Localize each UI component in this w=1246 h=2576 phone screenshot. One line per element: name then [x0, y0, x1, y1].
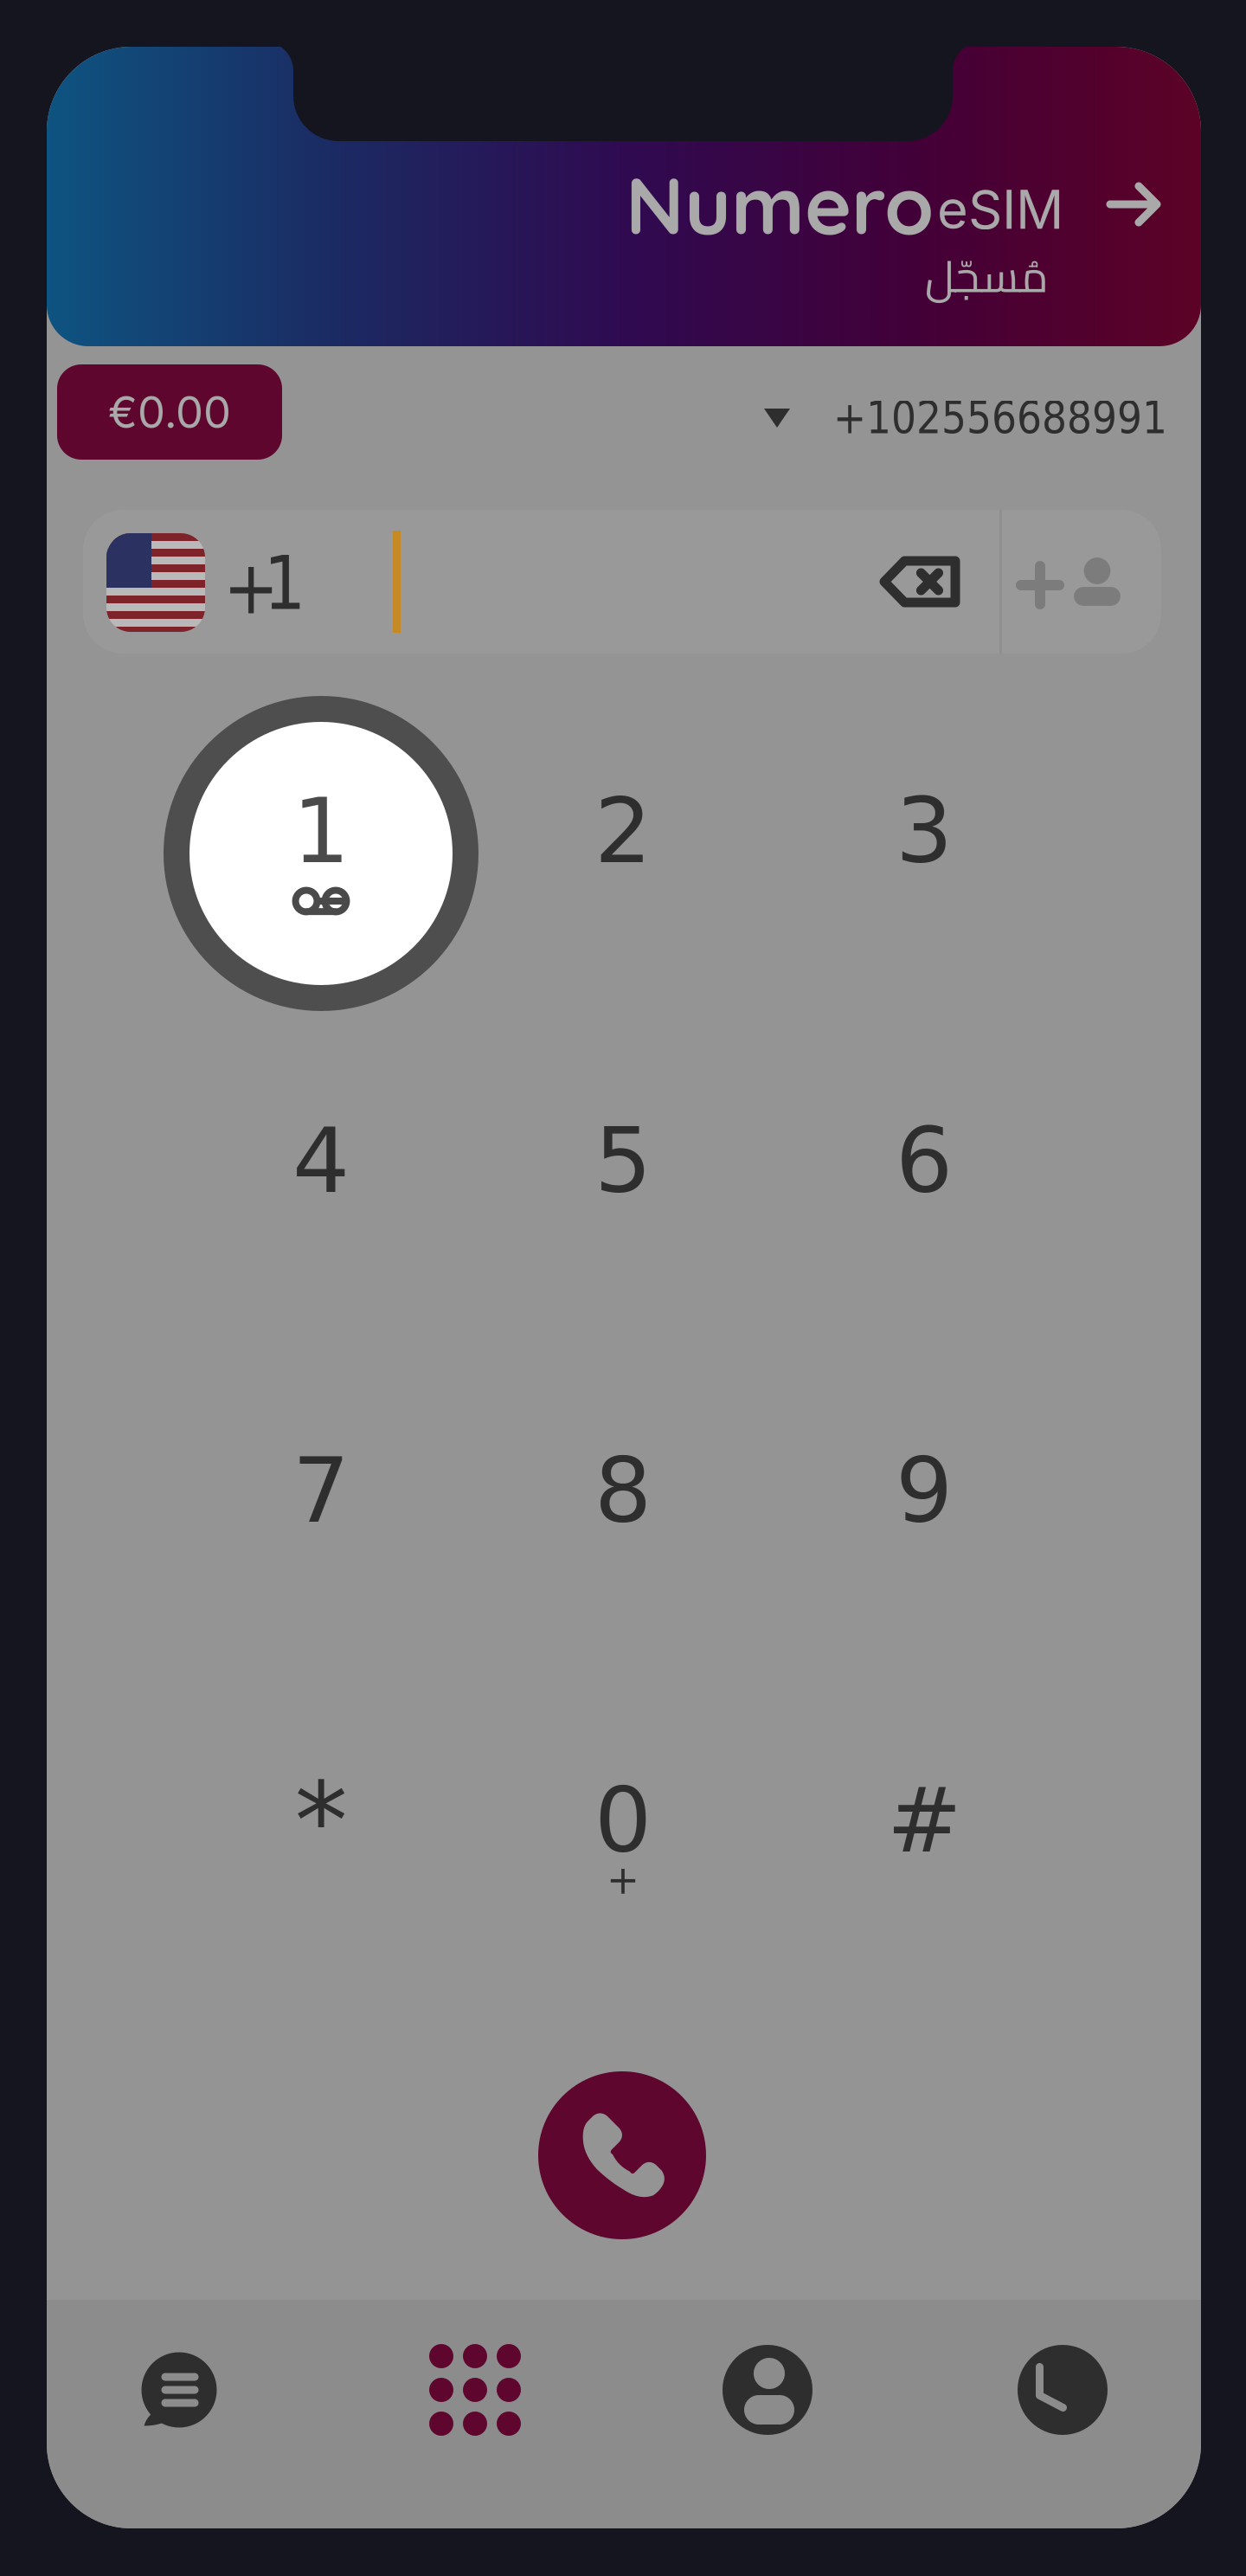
button[interactable]: 4 — [170, 985, 472, 1331]
button[interactable]: 9 — [774, 1315, 1075, 1661]
staticText: 3 — [896, 779, 953, 883]
button[interactable]: Call — [538, 2071, 706, 2239]
staticText: + — [607, 1857, 639, 1903]
staticText: Numero — [626, 155, 934, 254]
button[interactable]: # — [774, 1645, 1075, 1991]
button[interactable]: Contacts — [681, 2316, 854, 2463]
button[interactable]: 7 — [170, 1315, 472, 1661]
staticText: €0.00 — [108, 385, 231, 439]
button[interactable]: 6 — [774, 985, 1075, 1331]
button[interactable]: 0 — [472, 1645, 774, 1991]
button[interactable]: €0.00 — [57, 364, 282, 460]
staticText: 1 — [292, 779, 350, 883]
button[interactable]: Add contact — [1002, 510, 1161, 654]
button[interactable]: 1 — [170, 655, 472, 1001]
staticText: 4 — [292, 1108, 350, 1213]
button[interactable]: Keypad — [389, 2316, 562, 2463]
button[interactable]: Delete — [840, 510, 999, 654]
staticText: + — [223, 545, 279, 631]
staticText: 6 — [896, 1108, 953, 1213]
staticText: 8 — [594, 1438, 652, 1543]
staticText: # — [886, 1768, 962, 1873]
staticText: +102556688991 — [833, 393, 1167, 444]
button[interactable]: Messages — [93, 2316, 266, 2463]
staticText: eSIM — [937, 177, 1063, 242]
staticText: 7 — [292, 1438, 350, 1543]
button[interactable]: Country code — [83, 510, 343, 654]
staticText: * — [295, 1759, 347, 1883]
button[interactable]: * — [170, 1645, 472, 1991]
button[interactable]: Recents — [976, 2316, 1149, 2463]
button[interactable]: Numero — [45, 159, 1157, 249]
staticText: 0 — [594, 1768, 652, 1873]
button[interactable]: مُسجّل — [857, 241, 1116, 311]
staticText: 1 — [263, 540, 306, 626]
button[interactable]: 5 — [472, 985, 774, 1331]
staticText: 9 — [896, 1438, 953, 1543]
staticText: 2 — [594, 779, 652, 883]
button[interactable]: 8 — [472, 1315, 774, 1661]
button[interactable]: +102556688991 — [717, 364, 1167, 468]
button[interactable]: 3 — [774, 655, 1075, 1001]
staticText: 5 — [594, 1108, 652, 1213]
button[interactable]: 2 — [472, 655, 774, 1001]
staticText: مُسجّل — [925, 235, 1048, 317]
